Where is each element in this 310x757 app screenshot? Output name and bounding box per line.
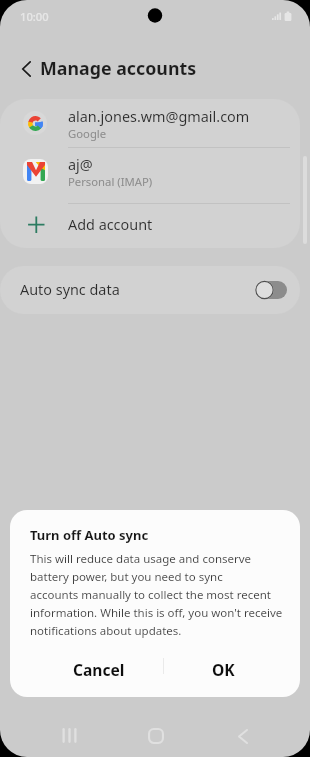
staticText: This will reduce data usage and conserve… <box>30 551 283 638</box>
button[interactable]: aj@ <box>0 147 300 195</box>
staticText: Personal (IMAP) <box>68 174 153 189</box>
button[interactable]: alan.jones.wm@gmail.com <box>0 99 300 147</box>
staticText: Add account <box>68 215 153 235</box>
staticText: Manage accounts <box>40 56 197 80</box>
staticText: alan.jones.wm@gmail.com <box>68 107 250 127</box>
button[interactable]: Cancel <box>34 647 163 691</box>
staticText: Cancel <box>73 659 125 680</box>
staticText: OK <box>212 659 235 680</box>
button[interactable]: Back <box>8 51 44 87</box>
staticText: Turn off Auto sync <box>30 526 149 544</box>
staticText: aj@ <box>68 155 93 175</box>
button[interactable]: Add account <box>0 203 300 248</box>
button[interactable]: Recent apps <box>46 712 92 757</box>
staticText: 10:00 <box>20 9 49 24</box>
button[interactable]: OK <box>164 647 282 691</box>
button[interactable]: Home <box>133 713 179 757</box>
staticText: Google <box>68 126 107 141</box>
button[interactable]: Auto sync data <box>0 266 300 314</box>
staticText: Auto sync data <box>20 280 120 300</box>
